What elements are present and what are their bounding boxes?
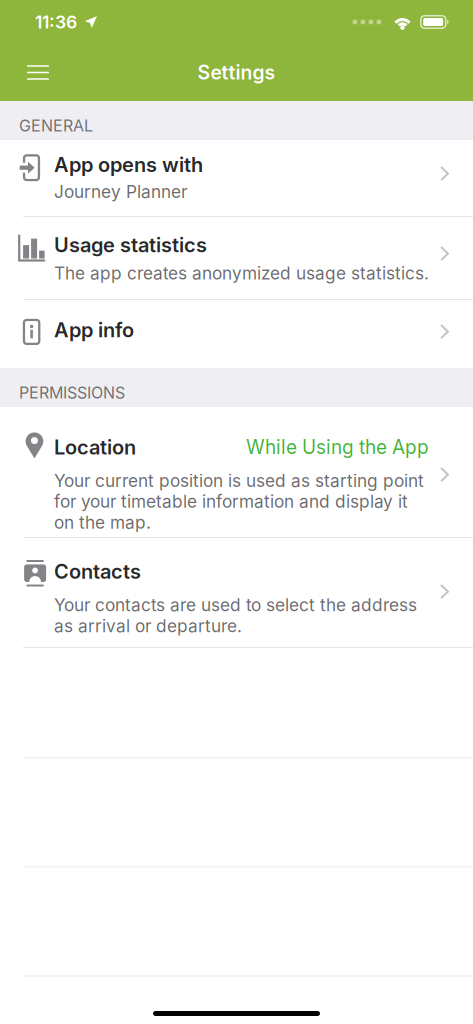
staticText: The app creates anonymized usage statist… <box>54 263 429 284</box>
staticText: Contacts <box>54 559 141 583</box>
button[interactable]: Menu <box>11 48 65 96</box>
staticText: Your current position is used as startin… <box>54 470 424 533</box>
staticText: Settings <box>197 61 275 84</box>
button[interactable]: Location <box>0 407 473 537</box>
button[interactable]: Usage statistics <box>0 217 473 299</box>
button[interactable]: App opens with <box>0 140 473 216</box>
button[interactable]: Contacts <box>0 538 473 647</box>
button[interactable]: App info <box>0 300 473 368</box>
staticText: PERMISSIONS <box>19 383 125 402</box>
staticText: GENERAL <box>19 116 93 135</box>
staticText: Usage statistics <box>54 233 207 257</box>
staticText: App info <box>54 318 134 342</box>
staticText: App opens with <box>54 153 203 177</box>
staticText: Location <box>54 435 136 459</box>
staticText: 11:36 <box>35 11 77 33</box>
staticText: Your contacts are used to select the add… <box>54 595 417 636</box>
staticText: Journey Planner <box>54 181 187 202</box>
staticText: While Using the App <box>246 436 429 458</box>
